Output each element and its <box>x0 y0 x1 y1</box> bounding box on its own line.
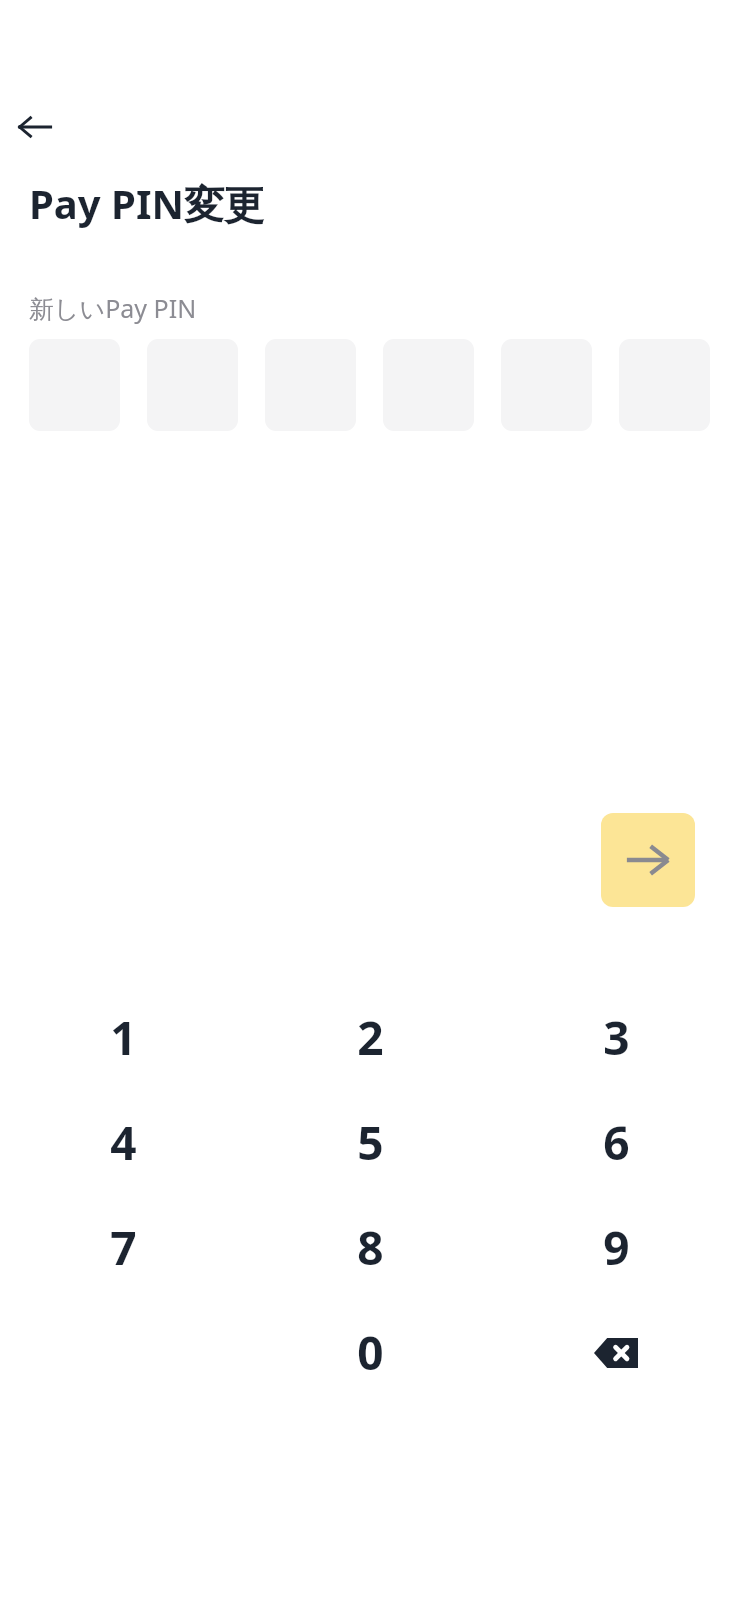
staticText: 8 <box>357 1216 384 1279</box>
staticText: Pay PIN変更 <box>29 176 264 231</box>
button[interactable]: 3 <box>493 985 739 1090</box>
button[interactable]: 4 <box>0 1090 247 1195</box>
staticText: 3 <box>603 1006 630 1069</box>
button[interactable]: 1 <box>0 985 247 1090</box>
button[interactable]: 0 <box>247 1300 493 1405</box>
button[interactable]: 6 <box>493 1090 739 1195</box>
button[interactable]: Next <box>601 813 695 907</box>
button[interactable]: 7 <box>0 1195 247 1300</box>
button[interactable]: 8 <box>247 1195 493 1300</box>
button[interactable]: Backspace <box>493 1300 739 1405</box>
staticText: 4 <box>110 1111 137 1174</box>
button[interactable]: 2 <box>247 985 493 1090</box>
staticText: 1 <box>110 1006 137 1069</box>
staticText: 9 <box>603 1216 630 1279</box>
staticText: 7 <box>110 1216 137 1279</box>
staticText: 6 <box>603 1111 630 1174</box>
button[interactable]: 5 <box>247 1090 493 1195</box>
button[interactable]: 9 <box>493 1195 739 1300</box>
staticText: 新しいPay PIN <box>29 291 197 325</box>
staticText: 2 <box>357 1006 384 1069</box>
staticText: 0 <box>357 1321 384 1384</box>
staticText: 5 <box>357 1111 384 1174</box>
button[interactable]: Back <box>6 98 64 156</box>
